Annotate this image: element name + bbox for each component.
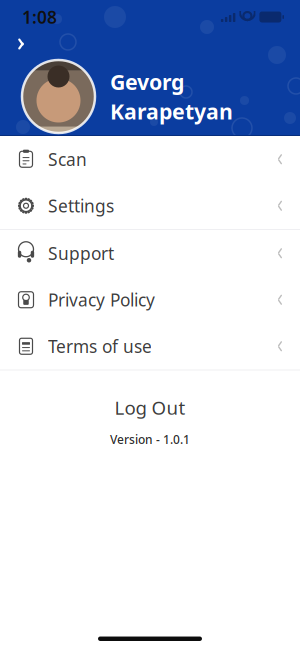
- staticText: Privacy Policy: [48, 288, 155, 311]
- button[interactable]: Support: [0, 230, 300, 276]
- staticText: Support: [48, 242, 114, 265]
- button[interactable]: Back: [6, 31, 36, 57]
- button[interactable]: Settings: [0, 182, 300, 229]
- button[interactable]: Terms of use: [0, 323, 300, 369]
- button[interactable]: Log Out: [0, 387, 300, 427]
- staticText: Settings: [48, 194, 114, 217]
- button[interactable]: Privacy Policy: [0, 276, 300, 323]
- staticText: Version - 1.0.1: [110, 431, 190, 447]
- staticText: 1:08: [22, 5, 57, 28]
- staticText: Gevorg: [110, 68, 184, 96]
- staticText: Terms of use: [48, 335, 152, 358]
- staticText: Scan: [48, 148, 87, 171]
- button[interactable]: Scan: [0, 136, 300, 182]
- staticText: Log Out: [114, 395, 185, 420]
- staticText: Karapetyan: [110, 97, 233, 125]
